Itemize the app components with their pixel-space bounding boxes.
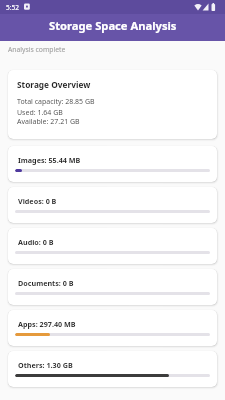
button[interactable]: Audio: 0 B xyxy=(8,228,217,264)
staticText: Available: 27.21 GB xyxy=(17,117,80,127)
button[interactable]: Images: 55.44 MB xyxy=(8,146,217,182)
button[interactable]: Storage Overview xyxy=(8,70,217,139)
staticText: Others: 1.30 GB xyxy=(18,360,73,370)
staticText: Apps: 297.40 MB xyxy=(18,319,76,329)
staticText: Storage Overview xyxy=(17,79,91,90)
staticText: Storage Space Analysis xyxy=(49,18,177,33)
staticText: Images: 55.44 MB xyxy=(18,155,81,165)
button[interactable]: Documents: 0 B xyxy=(8,269,217,305)
staticText: Audio: 0 B xyxy=(18,237,54,247)
button[interactable]: Others: 1.30 GB xyxy=(8,351,217,387)
button[interactable]: Apps: 297.40 MB xyxy=(8,310,217,346)
staticText: 5:52 xyxy=(6,3,19,12)
staticText: Total capacity: 28.85 GB xyxy=(17,97,95,107)
staticText: Used: 1.64 GB xyxy=(17,108,63,118)
staticText: Documents: 0 B xyxy=(18,278,74,288)
staticText: Videos: 0 B xyxy=(18,196,57,206)
button[interactable]: Videos: 0 B xyxy=(8,187,217,223)
staticText: Analysis complete xyxy=(8,45,66,54)
